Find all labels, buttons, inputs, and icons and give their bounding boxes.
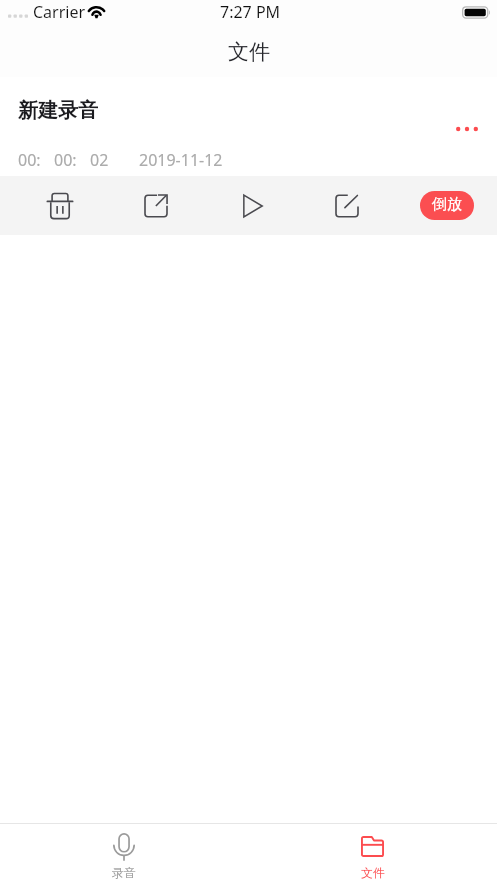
staticText: 文件 bbox=[228, 39, 270, 65]
button[interactable]: Share bbox=[126, 176, 186, 235]
button[interactable]: 文件 bbox=[248, 824, 497, 883]
button[interactable]: Edit bbox=[317, 176, 377, 235]
staticText: 倒放 bbox=[432, 195, 462, 214]
staticText: 00: bbox=[18, 149, 41, 171]
button[interactable]: 倒放 bbox=[420, 191, 474, 220]
staticText: 7:27 PM bbox=[220, 1, 281, 23]
staticText: 新建录音 bbox=[18, 98, 98, 123]
staticText: 录音 bbox=[112, 865, 136, 880]
staticText: 文件 bbox=[361, 865, 385, 880]
staticText: Carrier bbox=[33, 1, 86, 23]
button[interactable]: Delete bbox=[30, 176, 90, 235]
staticText: 02 bbox=[90, 149, 109, 171]
staticText: 00: bbox=[54, 149, 77, 171]
button[interactable]: More options bbox=[441, 110, 492, 148]
button[interactable]: 录音 bbox=[0, 824, 248, 883]
staticText: 2019-11-12 bbox=[139, 149, 223, 171]
button[interactable]: Play bbox=[223, 176, 283, 235]
